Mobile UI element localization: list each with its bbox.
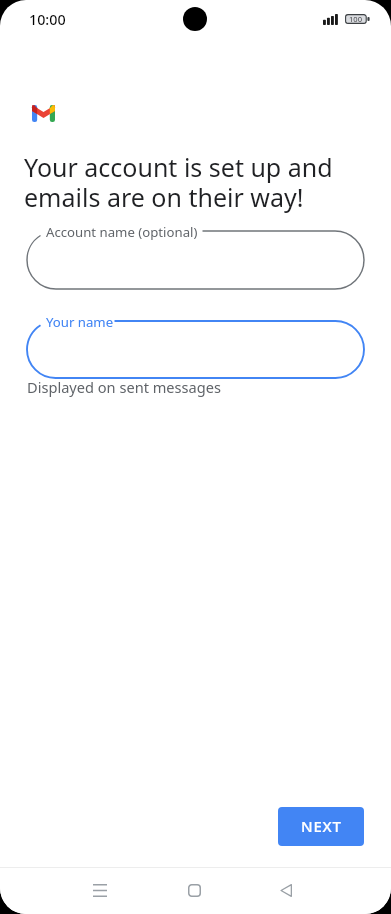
staticText: NEXT — [301, 816, 342, 836]
button[interactable]: NEXT — [278, 807, 364, 846]
staticText: Your account is set up and emails are on… — [24, 150, 356, 214]
staticText: 100 — [349, 14, 363, 24]
staticText: Account name (optional) — [46, 223, 198, 241]
button[interactable]: Back — [265, 869, 307, 911]
staticText: Displayed on sent messages — [27, 377, 221, 397]
button[interactable]: Home — [173, 869, 215, 911]
button[interactable]: Recent apps — [79, 869, 121, 911]
button[interactable]: Account name (optional) — [0, 217, 391, 303]
staticText: Your name — [46, 313, 114, 331]
button[interactable]: Your name — [0, 307, 391, 392]
staticText: 10:00 — [29, 10, 66, 29]
